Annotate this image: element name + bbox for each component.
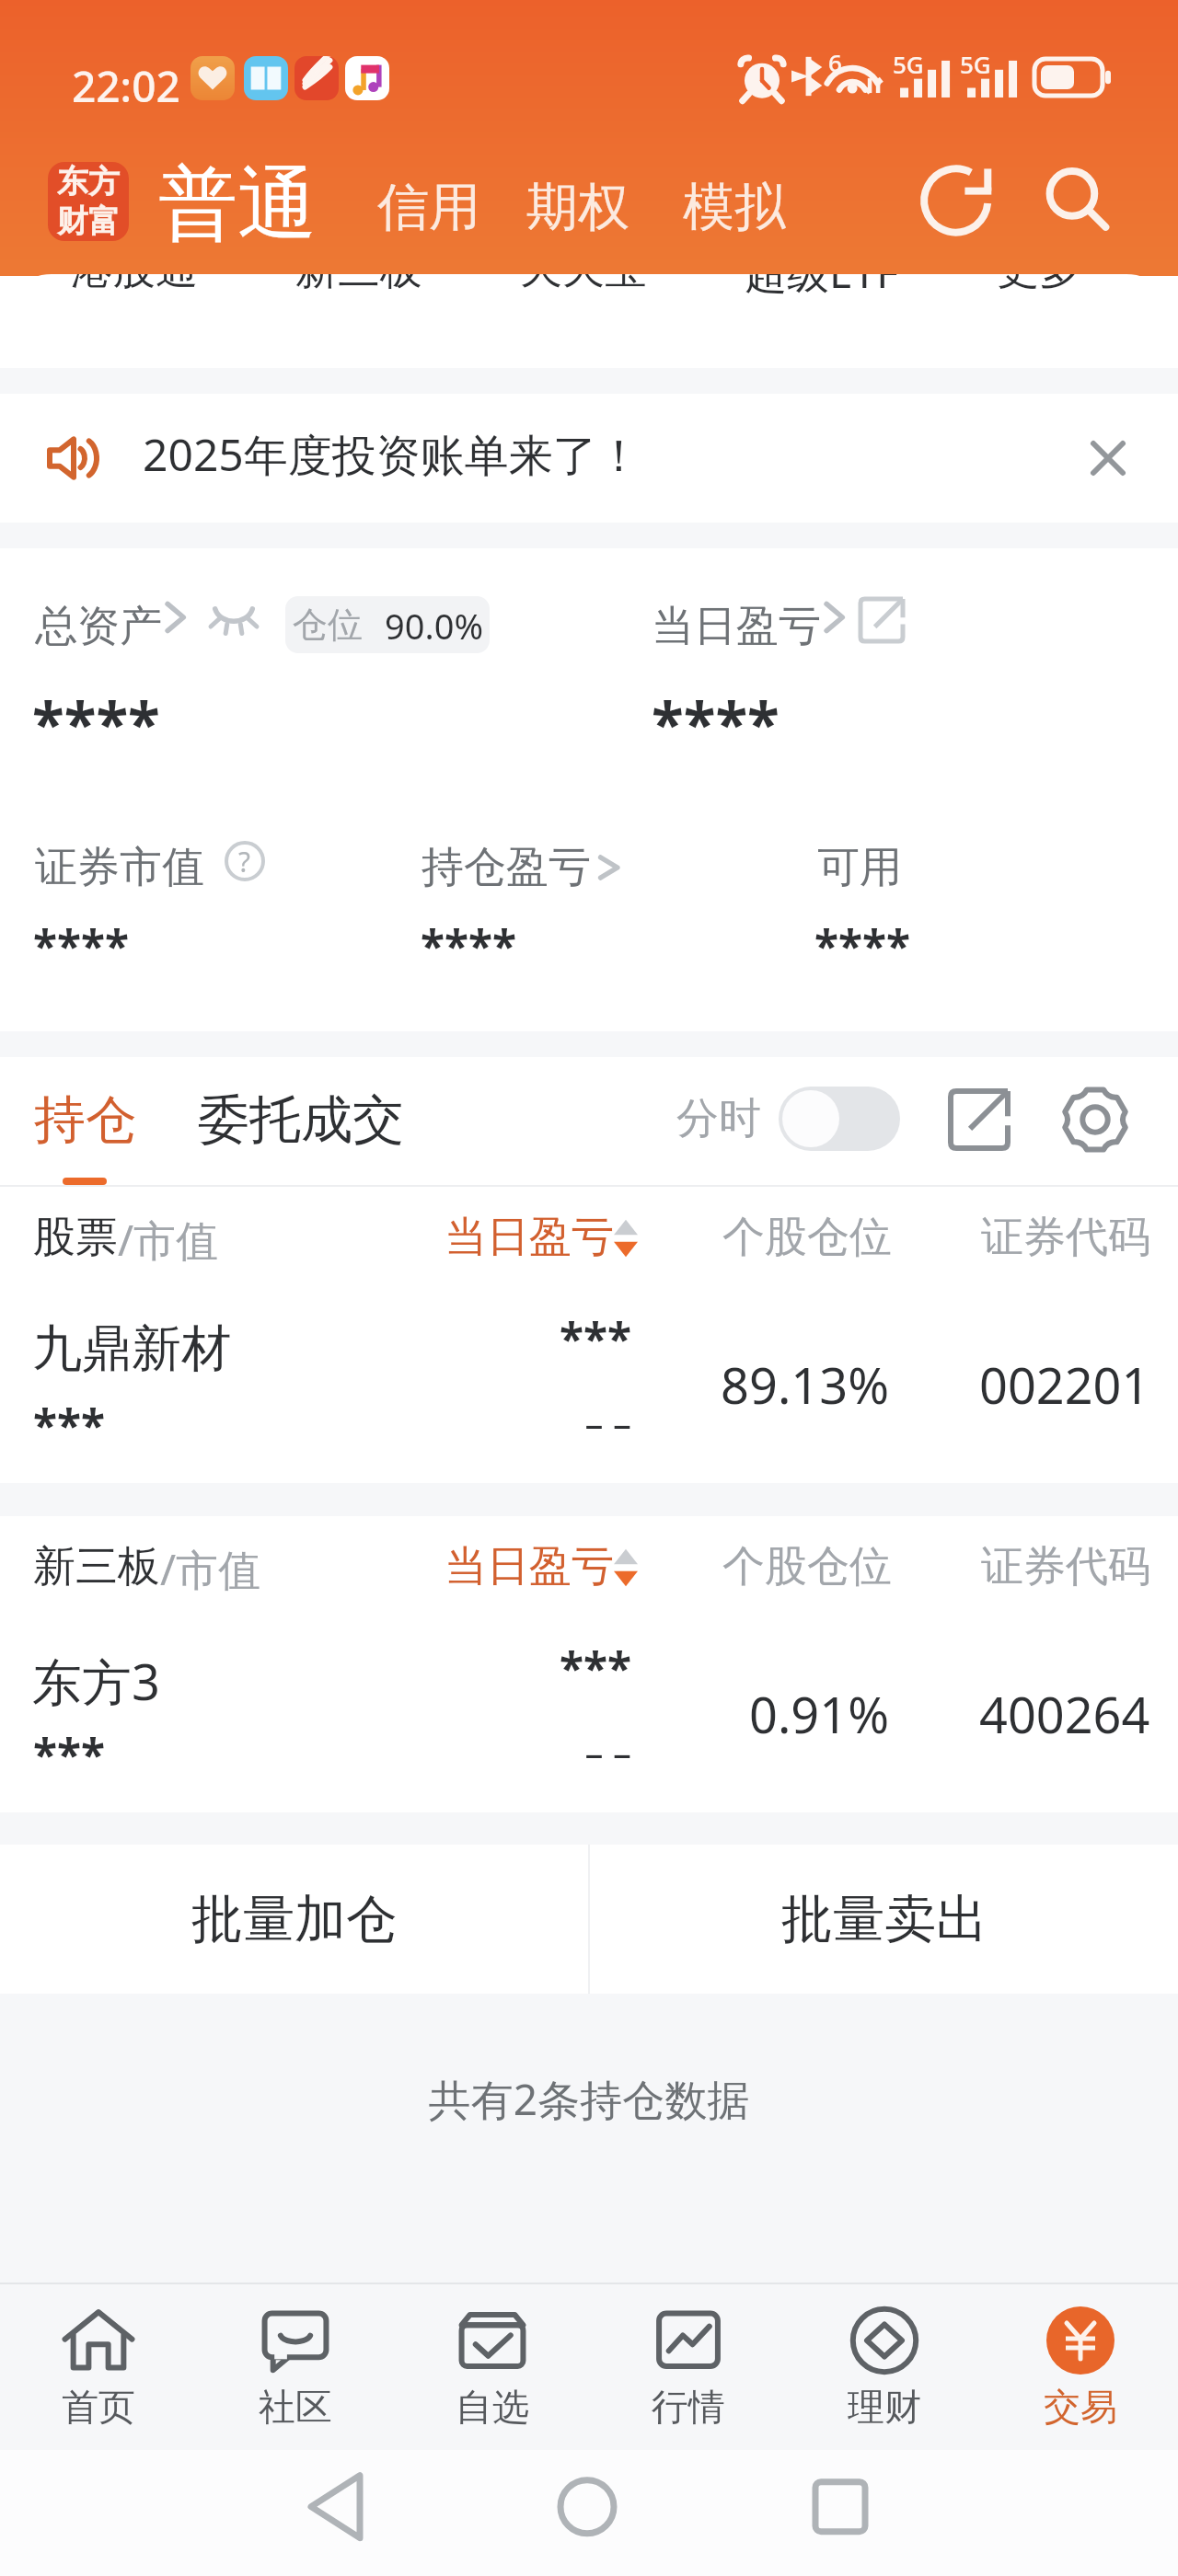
- staticText: 交易: [1044, 2384, 1117, 2430]
- button[interactable]: Toggle minute chart: [779, 1087, 900, 1151]
- staticText: 超级ETF: [745, 274, 899, 301]
- button[interactable]: 模拟: [683, 175, 786, 240]
- staticText: ***: [447, 1308, 631, 1368]
- button[interactable]: 持仓: [34, 1087, 137, 1153]
- staticText: 分时: [676, 1092, 761, 1145]
- staticText: 当日盈亏: [652, 600, 821, 653]
- staticText: ***: [447, 1638, 631, 1697]
- staticText: 普通: [158, 155, 317, 254]
- staticText: ***: [33, 1395, 106, 1455]
- staticText: 理财: [848, 2384, 921, 2430]
- staticText: 002201: [979, 1351, 1150, 1419]
- button[interactable]: 仓位: [285, 596, 490, 653]
- button[interactable]: 期权: [526, 175, 629, 240]
- staticText: /市值: [118, 1211, 219, 1269]
- button[interactable]: 首页: [0, 2284, 197, 2450]
- staticText: 90.0%: [385, 602, 483, 650]
- staticText: 可用: [817, 841, 902, 894]
- staticText: 委托成交: [198, 1087, 404, 1153]
- button[interactable]: 新三板: [295, 274, 422, 296]
- staticText: 东方: [57, 162, 120, 201]
- staticText: 证券市值: [35, 841, 204, 894]
- button[interactable]: Search: [1037, 160, 1118, 241]
- button[interactable]: 批量加仓: [0, 1845, 588, 1994]
- staticText: 新三板: [33, 1540, 160, 1593]
- staticText: 证券代码: [981, 1211, 1150, 1264]
- staticText: 自选: [456, 2384, 529, 2430]
- staticText: ****: [652, 683, 780, 763]
- staticText: – –: [447, 1397, 631, 1447]
- button[interactable]: Close: [1071, 421, 1145, 495]
- staticText: ***: [33, 1724, 106, 1784]
- staticText: 九鼎新材: [32, 1317, 231, 1380]
- button[interactable]: 交易: [982, 2284, 1178, 2450]
- staticText: 5G: [893, 48, 924, 80]
- staticText: 财富: [57, 201, 120, 241]
- button[interactable]: 新三板: [0, 1516, 1178, 1812]
- button[interactable]: 委托成交: [198, 1087, 404, 1153]
- button[interactable]: Hide amount: [199, 591, 269, 651]
- button[interactable]: 自选: [394, 2284, 590, 2450]
- staticText: 股票: [33, 1211, 118, 1264]
- staticText: 社区: [259, 2384, 332, 2430]
- button[interactable]: 更多: [997, 274, 1081, 296]
- button[interactable]: Share: [941, 1081, 1018, 1158]
- button[interactable]: 普通: [158, 155, 317, 254]
- staticText: 共有2条持仓数据: [0, 2070, 1178, 2128]
- staticText: 模拟: [683, 175, 786, 240]
- staticText: 持仓: [34, 1087, 137, 1153]
- staticText: 新三板: [295, 274, 422, 296]
- button[interactable]: 2025年度投资账单来了！: [0, 394, 1178, 523]
- staticText: 89.13%: [668, 1351, 889, 1419]
- staticText: 0.91%: [668, 1680, 889, 1748]
- button[interactable]: 理财: [786, 2284, 982, 2450]
- button[interactable]: 社区: [197, 2284, 394, 2450]
- staticText: 400264: [979, 1680, 1150, 1748]
- staticText: 仓位: [293, 603, 363, 647]
- staticText: 个股仓位: [722, 1211, 892, 1264]
- staticText: 行情: [652, 2384, 725, 2430]
- button[interactable]: 总资产: [31, 587, 191, 648]
- staticText: 当日盈亏: [445, 1540, 614, 1593]
- staticText: 2025年度投资账单来了！: [143, 424, 641, 485]
- button[interactable]: East Money logo: [48, 162, 129, 241]
- staticText: – –: [447, 1727, 631, 1777]
- button[interactable]: 行情: [590, 2284, 786, 2450]
- staticText: 批量卖出: [781, 1887, 987, 1952]
- staticText: ****: [814, 915, 911, 975]
- button[interactable]: 批量卖出: [590, 1845, 1178, 1994]
- button[interactable]: Settings: [1057, 1081, 1134, 1158]
- staticText: 持仓盈亏: [422, 841, 591, 894]
- button[interactable]: Refresh: [918, 160, 999, 241]
- button[interactable]: 当日盈亏: [648, 587, 850, 648]
- staticText: 期权: [526, 175, 629, 240]
- staticText: 天天宝: [520, 274, 647, 296]
- staticText: ****: [33, 915, 130, 975]
- button[interactable]: Open daily detail: [849, 587, 915, 653]
- staticText: 东方3: [32, 1647, 160, 1715]
- staticText: 22:02: [72, 57, 180, 115]
- button[interactable]: 股票: [0, 1187, 1178, 1483]
- button[interactable]: 天天宝: [520, 274, 647, 296]
- staticText: 首页: [62, 2384, 135, 2430]
- button[interactable]: 超级ETF: [745, 274, 899, 301]
- staticText: 6: [828, 46, 842, 78]
- staticText: ****: [421, 915, 517, 975]
- staticText: /市值: [160, 1540, 261, 1598]
- staticText: 证券代码: [981, 1540, 1150, 1593]
- staticText: 个股仓位: [722, 1540, 892, 1593]
- button[interactable]: 港股通: [71, 274, 198, 296]
- staticText: 更多: [997, 274, 1081, 296]
- staticText: 批量加仓: [191, 1887, 398, 1952]
- staticText: 总资产: [35, 600, 162, 653]
- staticText: ****: [32, 683, 160, 763]
- staticText: 5G: [960, 48, 991, 80]
- staticText: ?: [238, 843, 251, 880]
- staticText: 港股通: [71, 274, 198, 296]
- staticText: 当日盈亏: [445, 1211, 614, 1264]
- button[interactable]: 持仓盈亏: [422, 841, 626, 894]
- button[interactable]: Help: [221, 837, 269, 885]
- button[interactable]: 信用: [377, 175, 480, 240]
- staticText: 信用: [377, 175, 480, 240]
